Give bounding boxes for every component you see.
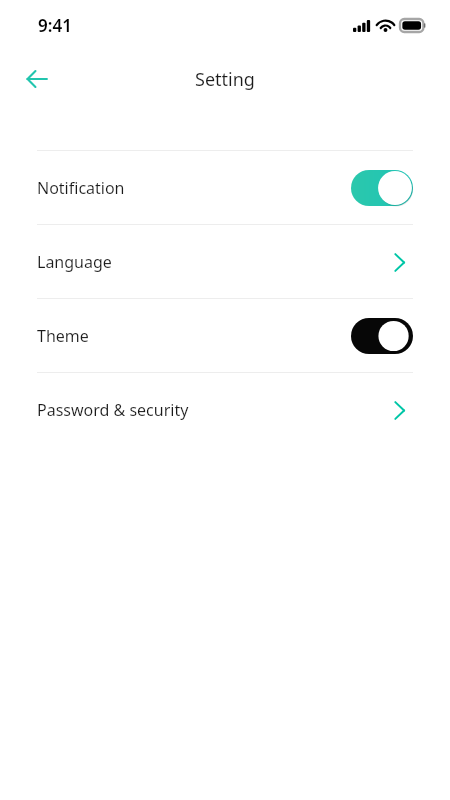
button[interactable]: Notification toggle — [351, 170, 413, 206]
button[interactable]: Back — [16, 58, 58, 100]
staticText: Setting — [195, 67, 255, 92]
button[interactable]: Theme toggle — [351, 318, 413, 354]
staticText: Notification — [37, 177, 125, 199]
button[interactable]: Notification — [0, 151, 450, 224]
button[interactable]: Language — [0, 225, 450, 298]
button[interactable]: Open — [385, 396, 413, 424]
staticText: Language — [37, 251, 112, 273]
button[interactable]: Open — [385, 248, 413, 276]
button[interactable]: Password & security — [0, 373, 450, 446]
staticText: Password & security — [37, 399, 189, 421]
staticText: Theme — [37, 325, 89, 347]
button[interactable]: Theme — [0, 299, 450, 372]
staticText: 9:41 — [38, 14, 72, 37]
